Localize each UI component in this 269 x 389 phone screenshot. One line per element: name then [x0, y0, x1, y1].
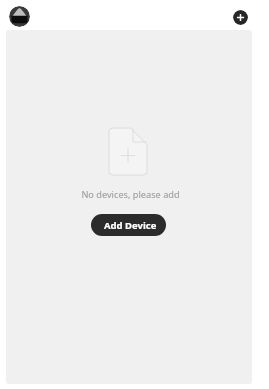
staticText: Add Device	[104, 219, 157, 232]
button[interactable]: Home	[9, 6, 30, 27]
button[interactable]: Add device	[233, 10, 248, 25]
button[interactable]: Add Device	[91, 214, 166, 236]
staticText: No devices, please add	[81, 188, 180, 201]
